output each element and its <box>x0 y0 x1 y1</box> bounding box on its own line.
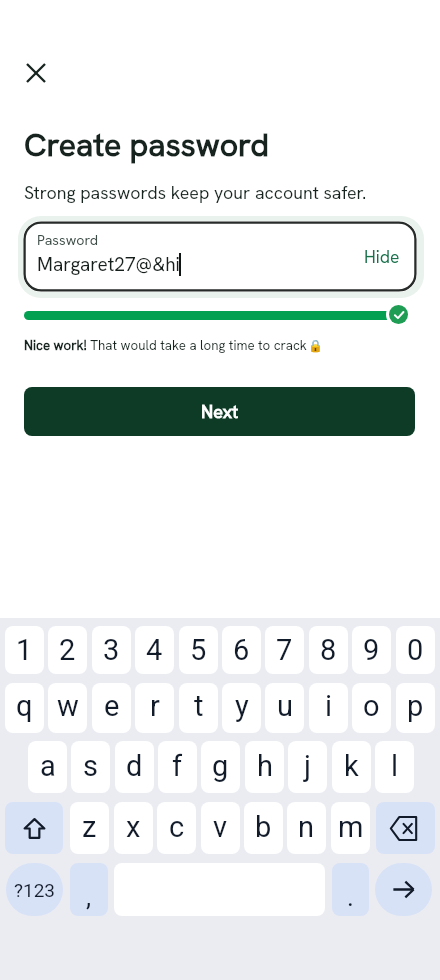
staticText: y <box>235 689 249 723</box>
staticText: 6 <box>233 633 250 667</box>
button[interactable]: , <box>70 863 108 916</box>
staticText: r <box>150 689 160 723</box>
button[interactable]: z <box>70 802 109 854</box>
staticText: t <box>194 689 204 723</box>
button[interactable]: f <box>158 741 197 793</box>
button[interactable]: b <box>244 802 283 854</box>
button[interactable]: Shift <box>5 802 63 854</box>
button[interactable]: c <box>157 802 196 854</box>
staticText: b <box>255 810 272 844</box>
staticText: Margaret27@&hi <box>37 252 180 277</box>
staticText: g <box>212 749 229 783</box>
staticText: v <box>213 810 228 844</box>
button[interactable]: a <box>28 741 67 793</box>
staticText: i <box>325 689 333 723</box>
staticText: 7 <box>276 633 293 667</box>
button[interactable]: Hide <box>360 241 404 272</box>
staticText: 0 <box>407 633 424 667</box>
button[interactable]: h <box>245 741 284 793</box>
staticText: Next <box>201 400 239 423</box>
button[interactable]: 2 <box>48 626 87 674</box>
button[interactable]: 5 <box>179 626 218 674</box>
staticText: s <box>83 749 98 783</box>
button[interactable]: Next <box>24 387 415 436</box>
staticText: 3 <box>103 633 120 667</box>
button[interactable]: r <box>135 683 174 733</box>
button[interactable]: q <box>5 683 44 733</box>
button[interactable]: 8 <box>309 626 348 674</box>
button[interactable]: x <box>114 802 153 854</box>
button[interactable]: 1 <box>5 626 44 674</box>
button[interactable]: Enter <box>375 863 432 916</box>
staticText: a <box>40 749 56 783</box>
button[interactable]: m <box>331 802 370 854</box>
staticText: ?123 <box>14 879 56 901</box>
staticText: o <box>363 689 380 723</box>
button[interactable]: t <box>179 683 218 733</box>
staticText: 5 <box>190 633 207 667</box>
button[interactable]: u <box>265 683 304 733</box>
button[interactable]: Password <box>23 221 417 292</box>
staticText: . <box>347 882 354 912</box>
button[interactable]: e <box>92 683 131 733</box>
staticText: Strong passwords keep your account safer… <box>24 181 367 204</box>
button[interactable]: 3 <box>92 626 131 674</box>
staticText: j <box>304 749 311 783</box>
button[interactable]: y <box>222 683 261 733</box>
staticText: Create password <box>24 124 270 166</box>
button[interactable]: d <box>115 741 154 793</box>
button[interactable]: o <box>352 683 391 733</box>
button[interactable]: v <box>201 802 240 854</box>
staticText: 8 <box>320 633 337 667</box>
button[interactable]: ?123 <box>6 863 63 916</box>
button[interactable]: n <box>287 802 326 854</box>
staticText: Password <box>37 231 99 250</box>
staticText: 🔒 <box>308 339 323 353</box>
staticText: 2 <box>59 633 76 667</box>
button[interactable]: s <box>71 741 110 793</box>
button[interactable]: 4 <box>135 626 174 674</box>
button[interactable]: w <box>48 683 87 733</box>
staticText: q <box>16 689 33 723</box>
button[interactable]: i <box>309 683 348 733</box>
button[interactable]: . <box>332 863 369 916</box>
button[interactable]: l <box>375 741 414 793</box>
button[interactable]: k <box>332 741 371 793</box>
staticText: u <box>277 689 293 723</box>
staticText: h <box>257 749 273 783</box>
button[interactable]: 9 <box>352 626 391 674</box>
staticText: m <box>338 810 364 844</box>
button[interactable]: j <box>288 741 327 793</box>
staticText: l <box>391 749 399 783</box>
staticText: p <box>407 689 424 723</box>
staticText: d <box>126 749 143 783</box>
button[interactable]: Close <box>14 51 57 94</box>
staticText: 4 <box>146 633 163 667</box>
button[interactable]: Backspace <box>376 802 435 854</box>
staticText: , <box>86 882 92 912</box>
staticText: 1 <box>16 633 33 667</box>
staticText: x <box>126 810 141 844</box>
staticText: c <box>169 810 185 844</box>
staticText: e <box>104 689 120 723</box>
staticText: k <box>344 749 359 783</box>
staticText: z <box>82 810 97 844</box>
staticText: f <box>172 749 183 783</box>
staticText: w <box>57 689 79 723</box>
staticText: 9 <box>363 633 380 667</box>
button[interactable]: 0 <box>396 626 435 674</box>
button[interactable]: p <box>396 683 435 733</box>
staticText: Nice work! That would take a long time t… <box>24 337 311 354</box>
button[interactable]: 7 <box>265 626 304 674</box>
staticText: n <box>298 810 315 844</box>
button[interactable]: 6 <box>222 626 261 674</box>
button[interactable]: g <box>201 741 240 793</box>
